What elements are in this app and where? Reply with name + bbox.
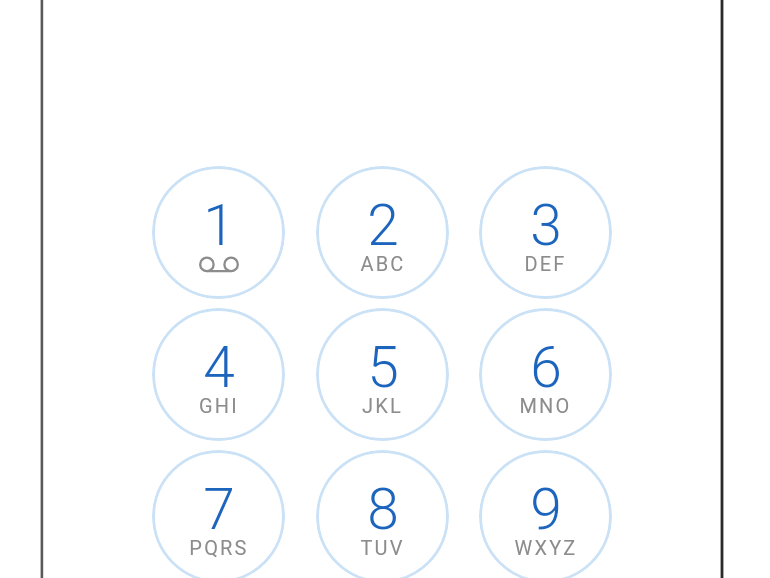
staticText: 2 [367, 192, 399, 259]
button[interactable]: Dial 4, GHI [152, 308, 285, 441]
staticText: TUV [360, 536, 405, 559]
staticText: 3 [530, 192, 562, 259]
button[interactable]: Dial 9, WXYZ [479, 450, 612, 578]
staticText: 7 [203, 476, 235, 543]
button[interactable]: Dial 1, voicemail [152, 166, 285, 299]
staticText: DEF [524, 252, 567, 275]
staticText: 5 [367, 334, 399, 401]
staticText: 9 [530, 476, 562, 543]
staticText: PQRS [189, 536, 249, 559]
staticText: MNO [519, 394, 572, 417]
button[interactable]: Dial 7, PQRS [152, 450, 285, 578]
staticText: GHI [199, 394, 239, 417]
staticText: WXYZ [514, 536, 578, 559]
button[interactable]: Dial 8, TUV [316, 450, 449, 578]
staticText: 1 [203, 192, 235, 259]
staticText: 8 [367, 476, 399, 543]
staticText: JKL [362, 394, 403, 417]
button[interactable]: Dial 3, DEF [479, 166, 612, 299]
button[interactable]: Dial 2, ABC [316, 166, 449, 299]
button[interactable]: Dial 6, MNO [479, 308, 612, 441]
staticText: 4 [203, 334, 235, 401]
staticText: ABC [360, 252, 406, 275]
staticText: 6 [530, 334, 562, 401]
button[interactable]: Dial 5, JKL [316, 308, 449, 441]
